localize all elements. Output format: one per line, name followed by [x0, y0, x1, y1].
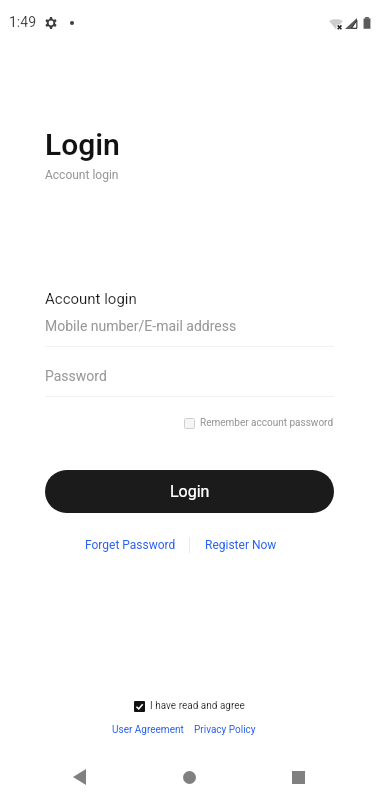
button[interactable]: I have read and agree: [131, 696, 248, 716]
button[interactable]: Recent apps: [274, 753, 322, 800]
staticText: Login: [170, 482, 210, 501]
button[interactable]: Privacy Policy: [192, 721, 258, 739]
staticText: I have read and agree: [150, 700, 245, 712]
button[interactable]: Back: [55, 753, 103, 800]
button[interactable]: Login: [45, 470, 334, 513]
staticText: Remember account password: [200, 417, 334, 429]
staticText: Account login: [45, 290, 137, 308]
staticText: Login: [45, 127, 120, 162]
staticText: Account login: [45, 168, 119, 182]
staticText: Mobile number/E-mail address: [45, 318, 237, 334]
staticText: Password: [45, 368, 107, 384]
button[interactable]: User Agreement: [110, 721, 186, 739]
button[interactable]: Forget Password: [83, 535, 178, 555]
button[interactable]: Register Now: [203, 535, 279, 555]
button[interactable]: Remember account password: [180, 412, 338, 434]
staticText: 1:49: [9, 14, 36, 30]
button[interactable]: Home: [165, 753, 213, 800]
